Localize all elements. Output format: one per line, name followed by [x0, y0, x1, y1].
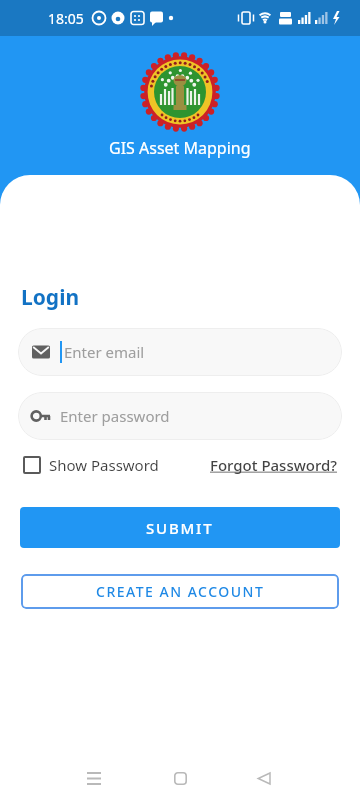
button[interactable]: Enter email [18, 328, 342, 376]
button[interactable]: SUBMIT [20, 507, 340, 548]
staticText: SUBMIT [146, 518, 214, 538]
staticText: 18:05 [48, 9, 84, 28]
staticText: GIS Asset Mapping [109, 137, 251, 159]
staticText: CREATE AN ACCOUNT [96, 582, 265, 601]
button[interactable]: CREATE AN ACCOUNT [21, 574, 339, 609]
button[interactable] [240, 766, 288, 790]
staticText: Enter email [64, 342, 145, 362]
button[interactable]: Enter password [18, 392, 342, 440]
button[interactable] [156, 766, 204, 790]
button[interactable]: Forgot Password? [210, 455, 338, 475]
button[interactable] [70, 766, 118, 790]
button[interactable] [23, 456, 41, 474]
staticText: Show Password [49, 455, 159, 475]
staticText: Enter password [60, 406, 170, 426]
staticText: Login [21, 283, 80, 312]
